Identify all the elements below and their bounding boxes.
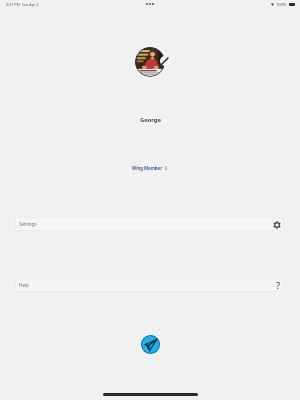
staticText: 100% — [276, 2, 287, 7]
button[interactable]: Edit profile photo — [160, 56, 170, 66]
button[interactable]: Send — [141, 335, 160, 354]
button[interactable]: Settings — [15, 217, 284, 231]
staticText: ? — [276, 279, 281, 291]
button[interactable]: Wing Member — [132, 165, 168, 171]
staticText: Settings — [19, 221, 37, 227]
button[interactable]: Profile photo — [135, 47, 165, 77]
staticText: George — [140, 116, 161, 124]
staticText: Help — [19, 282, 30, 288]
staticText: 4:07 PM Sun Apr 2 — [6, 2, 39, 7]
staticText: Wing Member — [132, 165, 163, 171]
button[interactable]: Help — [15, 278, 284, 292]
